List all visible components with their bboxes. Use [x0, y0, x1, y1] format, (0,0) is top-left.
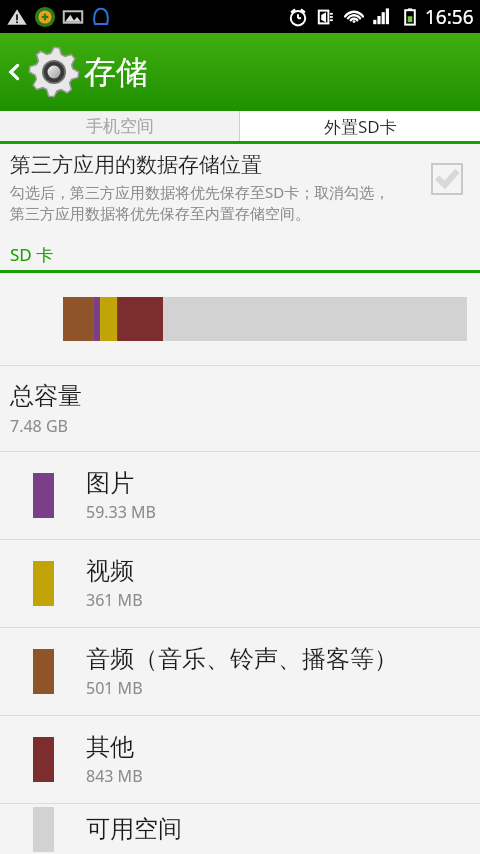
- button[interactable]: Back: [4, 33, 82, 111]
- staticText: 存储: [84, 52, 148, 92]
- staticText: 59.33 MB: [86, 501, 156, 523]
- button[interactable]: Store third-party app data on SD card: [432, 164, 462, 194]
- button[interactable]: 手机空间: [0, 111, 239, 141]
- staticText: 图片: [86, 468, 134, 498]
- staticText: 外置SD卡: [324, 115, 397, 138]
- staticText: 勾选后，第三方应用数据将优先保存至SD卡；取消勾选，第三方应用数据将优先保存至内…: [10, 182, 402, 223]
- staticText: 501 MB: [86, 677, 143, 699]
- staticText: 第三方应用的数据存储位置: [10, 152, 262, 178]
- staticText: 视频: [86, 556, 134, 586]
- button[interactable]: 第三方应用的数据存储位置: [0, 144, 480, 239]
- button[interactable]: 图片: [0, 452, 480, 539]
- staticText: SD 卡: [10, 243, 54, 266]
- staticText: 7.48 GB: [10, 415, 68, 437]
- button[interactable]: 总容量: [0, 366, 480, 451]
- staticText: 843 MB: [86, 765, 143, 787]
- button[interactable]: 可用空间: [0, 804, 480, 854]
- staticText: 音频（音乐、铃声、播客等）: [86, 644, 398, 674]
- staticText: 手机空间: [86, 116, 154, 137]
- staticText: 其他: [86, 732, 134, 762]
- staticText: 可用空间: [86, 814, 182, 844]
- button[interactable]: 外置SD卡: [240, 111, 480, 141]
- button[interactable]: 其他: [0, 716, 480, 803]
- staticText: 16:56: [425, 4, 474, 30]
- staticText: 总容量: [10, 381, 82, 411]
- button[interactable]: 视频: [0, 540, 480, 627]
- button[interactable]: 音频（音乐、铃声、播客等）: [0, 628, 480, 715]
- staticText: 361 MB: [86, 589, 143, 611]
